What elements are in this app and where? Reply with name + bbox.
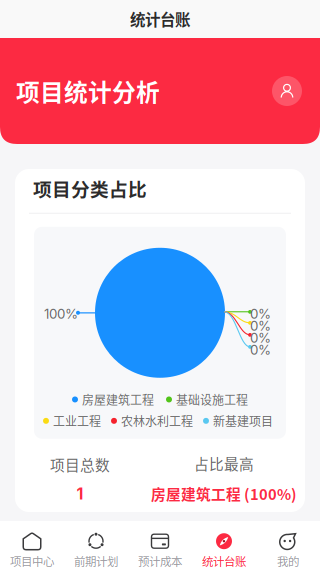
- staticText: 农林水利工程: [121, 412, 193, 430]
- button[interactable]: 我的: [256, 521, 320, 568]
- staticText: 1: [76, 484, 83, 503]
- staticText: 我的: [277, 553, 299, 568]
- staticText: 0%: [250, 306, 271, 322]
- staticText: 0%: [250, 342, 271, 358]
- staticText: 0%: [250, 330, 271, 346]
- staticText: 新基建项目: [213, 412, 273, 430]
- staticText: 基础设施工程: [176, 391, 248, 408]
- staticText: 前期计划: [74, 553, 118, 568]
- staticText: 房屋建筑工程: [82, 391, 154, 408]
- staticText: 100%: [44, 306, 78, 322]
- staticText: 项目统计分析: [16, 74, 160, 108]
- staticText: 统计台账: [130, 8, 190, 30]
- staticText: 项目总数: [50, 454, 110, 475]
- staticText: 工业工程: [53, 412, 101, 430]
- staticText: 项目中心: [10, 553, 54, 568]
- staticText: 统计台账: [202, 553, 246, 568]
- staticText: 预计成本: [138, 553, 182, 568]
- button[interactable]: 项目中心: [0, 521, 64, 568]
- staticText: 房屋建筑工程 (100%): [151, 483, 297, 504]
- button[interactable]: 前期计划: [64, 521, 128, 568]
- staticText: 0%: [250, 318, 271, 334]
- staticText: 项目分类占比: [33, 175, 147, 202]
- button[interactable]: 预计成本: [128, 521, 192, 568]
- staticText: 占比最高: [194, 453, 254, 474]
- button[interactable]: 统计台账: [192, 521, 256, 568]
- button[interactable]: 个人中心: [270, 74, 304, 108]
